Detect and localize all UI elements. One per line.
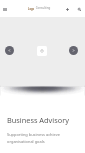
staticText: Consulting bbox=[35, 6, 51, 10]
button[interactable]: Add bbox=[63, 5, 72, 14]
button[interactable]: Next bbox=[69, 46, 78, 55]
button[interactable]: Menu bbox=[0, 4, 10, 14]
staticText: Supporting business achieve bbox=[7, 132, 60, 137]
staticText: Logo bbox=[28, 7, 35, 10]
button[interactable]: Search bbox=[75, 5, 84, 14]
button[interactable]: Previous bbox=[5, 46, 14, 55]
button[interactable]: Slide bbox=[37, 46, 47, 56]
staticText: organisational goals bbox=[7, 139, 45, 144]
staticText: Business Advisory bbox=[7, 115, 69, 125]
